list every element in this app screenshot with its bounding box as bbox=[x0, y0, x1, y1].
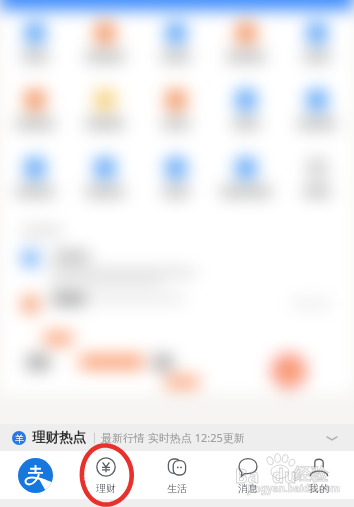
staticText: 理财 bbox=[96, 482, 116, 495]
staticText: jingyan.baidu.com bbox=[248, 481, 340, 495]
button[interactable]: 支付宝首页 bbox=[0, 451, 70, 499]
staticText: 我的 bbox=[309, 482, 329, 495]
staticText: 最新行情 实时热点 12:25更新 bbox=[101, 430, 245, 445]
staticText: 生活 bbox=[167, 482, 187, 495]
button[interactable]: 理财 bbox=[70, 451, 141, 499]
button[interactable]: 消息 bbox=[212, 451, 283, 499]
staticText: 经验 bbox=[294, 464, 328, 485]
button[interactable]: 生活 bbox=[141, 451, 212, 499]
button[interactable]: 我的 bbox=[283, 451, 354, 499]
staticText: 理财热点 bbox=[32, 429, 86, 446]
button[interactable]: 羊 bbox=[0, 424, 354, 451]
staticText: Ba bbox=[235, 463, 260, 489]
staticText: du bbox=[272, 463, 297, 489]
staticText: 羊 bbox=[15, 433, 24, 444]
staticText: 消息 bbox=[238, 482, 258, 495]
staticText: 丨 bbox=[89, 431, 100, 445]
